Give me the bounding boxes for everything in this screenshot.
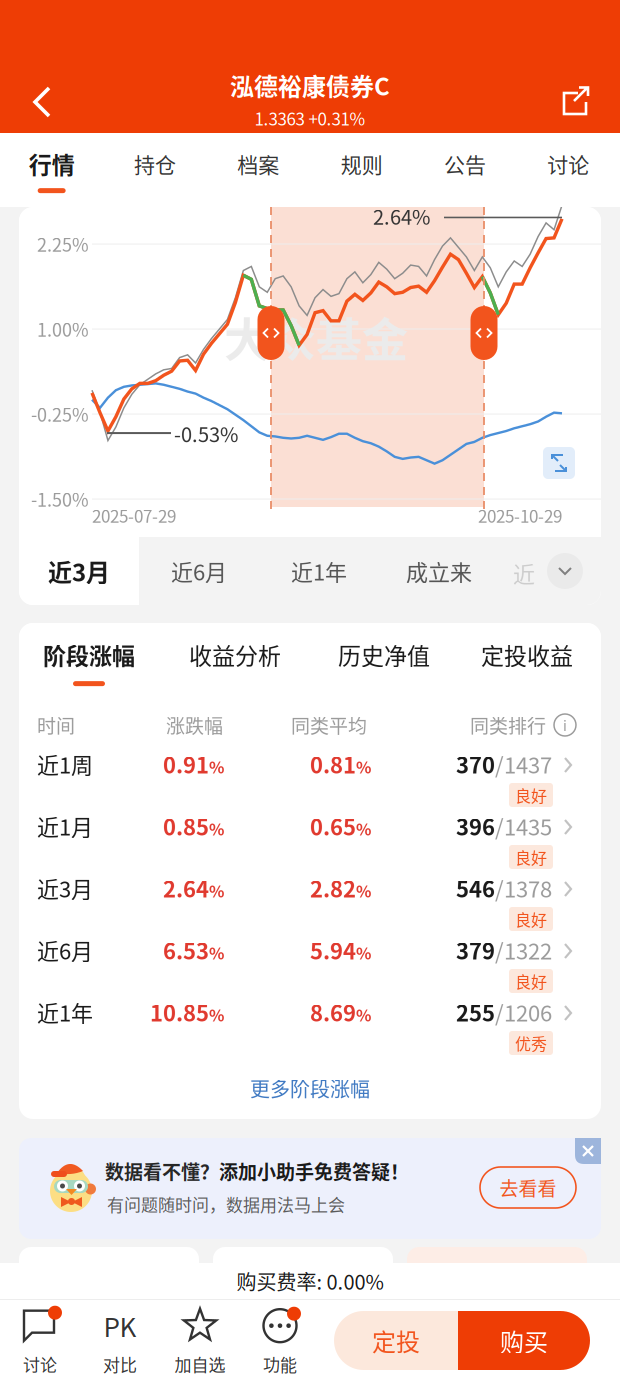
- staticText: /1437: [495, 748, 552, 780]
- staticText: %: [356, 755, 371, 778]
- staticText: %: [209, 817, 224, 840]
- staticText: 近1年: [37, 996, 93, 1028]
- button[interactable]: 成立来: [379, 537, 499, 605]
- staticText: 持仓: [134, 148, 176, 179]
- staticText: 对比: [103, 1352, 137, 1376]
- staticText: 近: [513, 557, 535, 589]
- staticText: 更多阶段涨幅: [250, 1073, 370, 1102]
- staticText: %: [356, 817, 371, 840]
- button[interactable]: PK: [80, 1299, 160, 1386]
- staticText: 购买费率: 0.00%: [236, 1266, 383, 1295]
- button[interactable]: Back: [8, 68, 76, 136]
- staticText: i: [563, 715, 567, 735]
- button[interactable]: 数据看不懂？: [19, 1138, 601, 1239]
- staticText: 8.69: [310, 996, 356, 1028]
- staticText: 近1周: [37, 748, 93, 780]
- staticText: %: [356, 879, 371, 902]
- button[interactable]: Share: [540, 68, 612, 134]
- staticText: 5.94: [310, 934, 356, 966]
- staticText: 添加小助手免费答疑！: [219, 1157, 409, 1185]
- button[interactable]: 讨论: [517, 133, 620, 207]
- staticText: %: [356, 941, 371, 964]
- staticText: 有问题随时问，数据用法马上会: [107, 1192, 345, 1216]
- staticText: 近6月: [37, 934, 93, 966]
- button[interactable]: 定投: [334, 1311, 458, 1370]
- staticText: -1.50%: [31, 486, 89, 512]
- button[interactable]: 近3月: [19, 537, 139, 605]
- button[interactable]: 近6月: [139, 537, 259, 605]
- staticText: 0.65: [310, 810, 356, 842]
- staticText: 去看看: [499, 1174, 556, 1201]
- staticText: 255: [456, 996, 495, 1028]
- staticText: 优秀: [515, 1031, 547, 1055]
- button[interactable]: 规则: [310, 133, 413, 207]
- staticText: 讨论: [23, 1352, 57, 1376]
- staticText: 阶段涨幅: [43, 638, 135, 671]
- staticText: 379: [456, 934, 495, 966]
- button[interactable]: 近1周: [19, 747, 601, 809]
- button[interactable]: 讨论: [0, 1299, 80, 1386]
- staticText: 规则: [341, 148, 383, 179]
- staticText: 0.91: [163, 748, 209, 780]
- staticText: 定投收益: [481, 638, 573, 671]
- button[interactable]: Expand chart: [543, 447, 575, 479]
- staticText: 近6月: [171, 555, 227, 587]
- button[interactable]: 近1月: [19, 809, 601, 871]
- staticText: 396: [456, 810, 495, 842]
- staticText: 良好: [515, 845, 547, 869]
- staticText: 0.85: [163, 810, 209, 842]
- staticText: PK: [103, 1307, 136, 1344]
- staticText: 近1年: [291, 555, 347, 587]
- staticText: 良好: [515, 969, 547, 993]
- staticText: 近3月: [37, 872, 93, 904]
- staticText: 2.64%: [373, 201, 430, 230]
- staticText: 成立来: [406, 555, 472, 587]
- staticText: 涨跌幅: [166, 711, 223, 739]
- button[interactable]: 更多阶段涨幅: [19, 1057, 601, 1119]
- button[interactable]: 公告: [413, 133, 517, 207]
- button[interactable]: 持仓: [103, 133, 207, 207]
- staticText: 档案: [237, 148, 279, 179]
- button[interactable]: 历史净值: [319, 623, 449, 701]
- button[interactable]: 定投收益: [462, 623, 592, 701]
- staticText: 行情: [29, 147, 75, 180]
- staticText: 2.25%: [37, 231, 89, 257]
- staticText: 同类排行: [470, 711, 546, 739]
- staticText: 1.00%: [37, 316, 89, 342]
- staticText: 良好: [515, 907, 547, 931]
- staticText: 大众基金: [224, 303, 408, 370]
- button[interactable]: 近6月: [19, 933, 601, 995]
- button[interactable]: 购买: [458, 1311, 590, 1370]
- button[interactable]: 功能: [240, 1299, 320, 1386]
- staticText: 同类平均: [291, 711, 367, 739]
- staticText: 2.82: [310, 872, 356, 904]
- button[interactable]: 阶段涨幅: [24, 623, 154, 701]
- staticText: 收益分析: [189, 638, 281, 671]
- staticText: 加自选: [174, 1352, 225, 1376]
- staticText: -0.25%: [31, 401, 89, 427]
- staticText: 近3月: [48, 554, 110, 588]
- staticText: 370: [456, 748, 495, 780]
- staticText: 泓德裕康债券C: [230, 68, 390, 102]
- staticText: 良好: [515, 783, 547, 807]
- staticText: 2025-07-29: [92, 503, 176, 528]
- button[interactable]: 近3月: [19, 871, 601, 933]
- staticText: 2.64: [163, 872, 209, 904]
- staticText: /1322: [495, 934, 552, 966]
- button[interactable]: 近1年: [19, 995, 601, 1057]
- button[interactable]: 收益分析: [170, 623, 300, 701]
- staticText: 2025-10-29: [478, 503, 562, 528]
- button[interactable]: 近1年: [259, 537, 379, 605]
- staticText: 10.85: [150, 996, 209, 1028]
- button[interactable]: More ranges: [499, 537, 601, 605]
- button[interactable]: 档案: [207, 133, 310, 207]
- staticText: /1378: [495, 872, 552, 904]
- button[interactable]: 加自选: [160, 1299, 240, 1386]
- button[interactable]: 行情: [0, 133, 103, 207]
- staticText: 0.81: [310, 748, 356, 780]
- staticText: 历史净值: [338, 638, 430, 671]
- staticText: 546: [456, 872, 495, 904]
- staticText: %: [356, 1003, 371, 1026]
- staticText: %: [209, 941, 224, 964]
- staticText: 公告: [444, 148, 486, 179]
